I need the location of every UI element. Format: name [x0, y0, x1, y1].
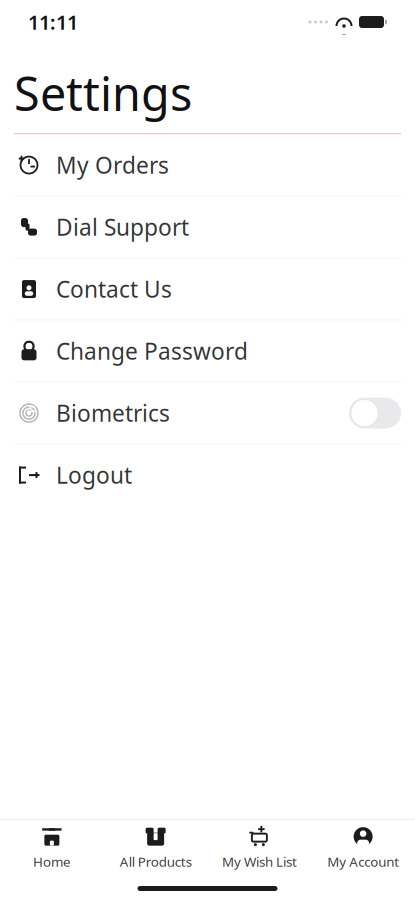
button[interactable]: Contact Us [0, 259, 415, 320]
button[interactable]: Change Password [0, 321, 415, 382]
staticText: Home [33, 853, 71, 870]
button[interactable]: My Wish List [207, 816, 311, 876]
staticText: Contact Us [56, 274, 172, 304]
staticText: My Orders [56, 150, 169, 180]
button[interactable]: Logout [0, 445, 415, 506]
button[interactable]: Dial Support [0, 197, 415, 258]
staticText: Settings [14, 62, 192, 124]
button[interactable]: All Products [104, 816, 208, 876]
button[interactable]: Biometrics [0, 383, 415, 444]
staticText: All Products [120, 853, 192, 870]
staticText: My Account [327, 853, 399, 870]
staticText: My Wish List [222, 853, 297, 870]
staticText: Dial Support [56, 212, 189, 242]
staticText: Biometrics [56, 398, 170, 428]
button[interactable]: My Account [311, 816, 415, 876]
staticText: Logout [56, 460, 132, 490]
staticText: Change Password [56, 336, 248, 366]
button[interactable]: Home [0, 816, 104, 876]
button[interactable]: My Orders [0, 135, 415, 196]
staticText: 11:11 [28, 9, 78, 35]
